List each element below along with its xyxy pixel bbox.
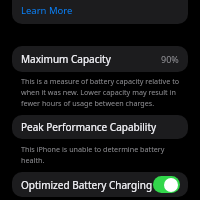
staticText: Maximum Capacity (21, 52, 111, 66)
button[interactable]: Optimized Battery Charging toggle (153, 176, 180, 193)
staticText: 90% (161, 53, 179, 65)
staticText: Peak Performance Capability (21, 120, 157, 134)
staticText: Optimized Battery Charging (21, 178, 153, 192)
staticText: This iPhone is unable to determine batte… (21, 144, 186, 165)
button[interactable]: Maximum Capacity (12, 46, 188, 72)
staticText: Learn More (21, 4, 73, 17)
button[interactable]: Optimized Battery Charging (12, 172, 188, 197)
button[interactable]: Peak Performance Capability (12, 115, 188, 139)
staticText: This is a measure of battery capacity re… (21, 76, 186, 108)
button[interactable]: Learn More (12, 0, 188, 24)
